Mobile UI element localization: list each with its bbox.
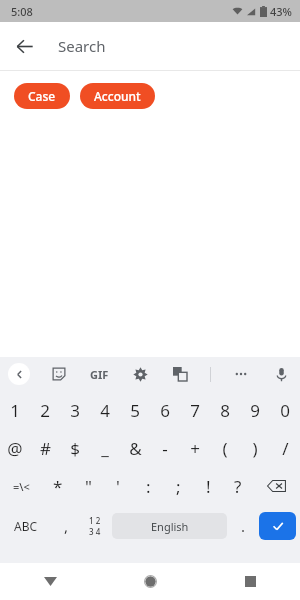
staticText: English (151, 519, 189, 534)
button[interactable]: $ (60, 429, 90, 467)
button[interactable]: Settings (130, 364, 150, 384)
staticText: ) (252, 437, 258, 460)
staticText: GIF (90, 367, 109, 382)
button[interactable]: Numbers (80, 505, 110, 547)
staticText: & (129, 437, 142, 460)
staticText: 2 (40, 399, 50, 422)
button[interactable]: More options (231, 364, 251, 384)
staticText: * (53, 475, 63, 498)
staticText: 6 (160, 399, 170, 422)
staticText: 1 2 (89, 515, 101, 526)
staticText: , (64, 516, 69, 536)
button[interactable]: : (133, 467, 163, 505)
button[interactable]: . (229, 505, 257, 547)
button[interactable]: Enter (259, 512, 296, 540)
button[interactable]: / (270, 429, 300, 467)
staticText: 5 (130, 399, 140, 422)
button[interactable]: Stickers (49, 364, 69, 384)
staticText: / (282, 437, 289, 460)
button[interactable]: " (73, 467, 103, 505)
staticText: 5:08 (11, 4, 33, 19)
button[interactable]: - (150, 429, 180, 467)
button[interactable]: * (43, 467, 73, 505)
staticText: @ (7, 437, 23, 460)
button[interactable]: Expand toolbar (8, 363, 30, 385)
button[interactable]: , (52, 505, 80, 547)
button[interactable]: Back (0, 563, 100, 600)
staticText: 7 (190, 399, 200, 422)
button[interactable]: Backspace (253, 467, 300, 505)
staticText: ABC (14, 518, 38, 534)
staticText: 4 (100, 399, 110, 422)
staticText: =\< (13, 479, 30, 494)
button[interactable]: Translate (170, 364, 190, 384)
staticText: Search (58, 36, 106, 56)
staticText: # (40, 437, 51, 460)
staticText: - (162, 437, 168, 460)
staticText: : (146, 475, 151, 498)
button[interactable]: English (112, 513, 227, 539)
staticText: . (241, 516, 246, 536)
button[interactable]: ABC (0, 505, 52, 547)
staticText: 9 (250, 399, 260, 422)
button[interactable]: + (180, 429, 210, 467)
button[interactable]: Home (100, 563, 200, 600)
staticText: ? (234, 475, 242, 498)
button[interactable]: & (120, 429, 150, 467)
staticText: $ (70, 437, 80, 460)
button[interactable]: 3 (60, 391, 90, 429)
button[interactable]: 2 (30, 391, 60, 429)
button[interactable]: @ (0, 429, 30, 467)
button[interactable]: 5 (120, 391, 150, 429)
staticText: 1 (10, 399, 20, 422)
staticText: 3 (70, 399, 80, 422)
button[interactable]: =\< (0, 467, 43, 505)
button[interactable]: ( (210, 429, 240, 467)
staticText: ! (206, 475, 211, 498)
button[interactable]: ' (103, 467, 133, 505)
button[interactable]: Recent apps (200, 563, 300, 600)
button[interactable]: ) (240, 429, 270, 467)
staticText: ' (116, 475, 120, 498)
button[interactable]: 1 (0, 391, 30, 429)
staticText: + (190, 437, 200, 460)
button[interactable]: # (30, 429, 60, 467)
staticText: Case (28, 88, 56, 104)
staticText: 3 4 (89, 526, 101, 537)
button[interactable]: ! (193, 467, 223, 505)
button[interactable]: ; (163, 467, 193, 505)
staticText: " (85, 475, 92, 498)
button[interactable]: Voice input (271, 364, 291, 384)
staticText: 0 (280, 399, 290, 422)
button[interactable]: Back (0, 22, 48, 70)
button[interactable]: Account (80, 83, 155, 109)
button[interactable]: Case (14, 83, 70, 109)
button[interactable]: _ (90, 429, 120, 467)
button[interactable]: 9 (240, 391, 270, 429)
staticText: 43% (270, 4, 292, 19)
staticText: _ (101, 437, 109, 460)
button[interactable]: ? (223, 467, 253, 505)
button[interactable]: 0 (270, 391, 300, 429)
button[interactable]: 7 (180, 391, 210, 429)
staticText: Account (94, 88, 141, 104)
staticText: 8 (220, 399, 230, 422)
button[interactable]: 8 (210, 391, 240, 429)
button[interactable]: 6 (150, 391, 180, 429)
button[interactable]: 4 (90, 391, 120, 429)
staticText: ( (222, 437, 228, 460)
staticText: ; (176, 475, 181, 498)
button[interactable]: GIF (88, 365, 111, 384)
